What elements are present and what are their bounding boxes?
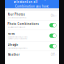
staticText: News	[7, 32, 14, 35]
staticText: Use collected Google effects	[7, 17, 26, 19]
staticText: Combination you have permissions	[15, 5, 49, 12]
button[interactable]: Your Photos	[5, 11, 59, 20]
staticText: Photo Combinations	[7, 22, 38, 26]
staticText: Beautiful photos from live edit	[7, 26, 24, 28]
staticText: Your Photos	[7, 13, 24, 16]
staticText: Combine from events, archive, summary, a…	[7, 36, 27, 40]
button[interactable]: News	[5, 30, 59, 41]
staticText: Weather	[7, 53, 19, 56]
staticText: Lifestyle	[7, 43, 18, 47]
button[interactable]: Weather	[5, 51, 59, 58]
button[interactable]: Lifestyle	[5, 42, 59, 51]
button[interactable]: Photo Combinations	[5, 21, 59, 30]
staticText: Entertainment, social, and more	[7, 47, 27, 49]
staticText: Reviewing our check your selections on a…	[13, 0, 50, 4]
staticText: Off	[51, 53, 55, 56]
button[interactable]: Reviewing our check your selections on a…	[5, 0, 59, 8]
staticText: On	[51, 14, 55, 17]
